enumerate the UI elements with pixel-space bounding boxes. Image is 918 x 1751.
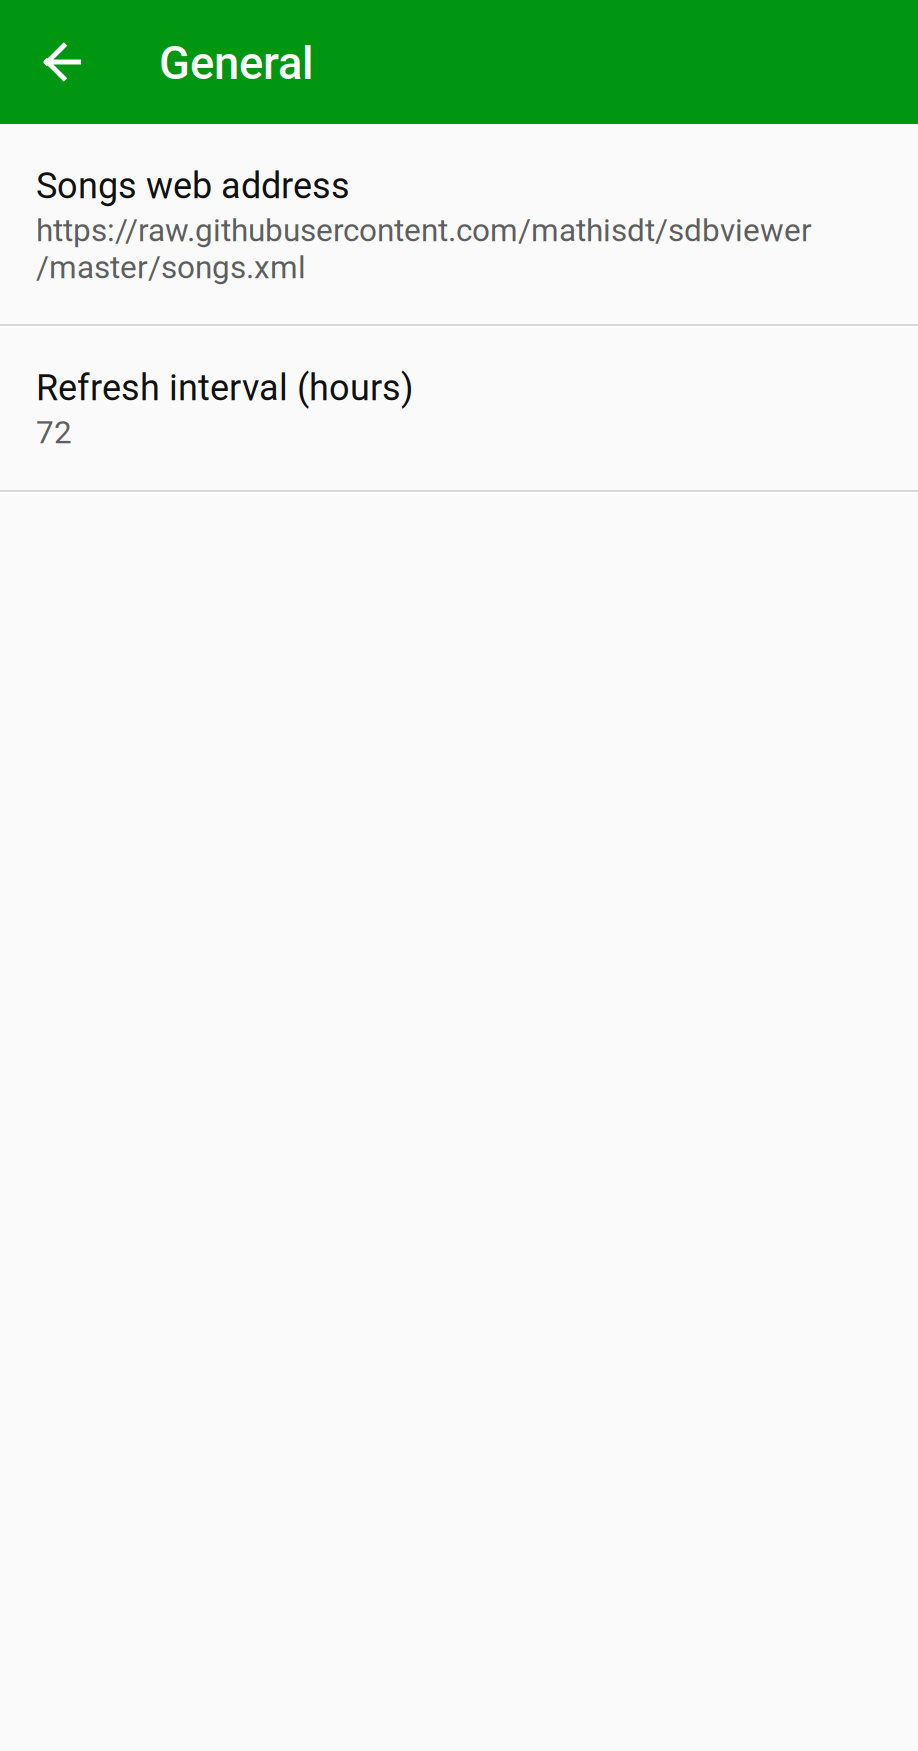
button[interactable]: Refresh interval (hours) [0, 328, 918, 490]
staticText: Refresh interval (hours) [36, 367, 414, 409]
staticText: General [159, 37, 314, 90]
staticText: https://raw.githubusercontent.com/mathis… [36, 212, 812, 249]
staticText: 72 [36, 414, 72, 451]
button[interactable]: Songs web address [0, 124, 918, 324]
staticText: Songs web address [36, 165, 350, 207]
staticText: /master/songs.xml [36, 249, 306, 286]
button[interactable]: Navigate up [0, 0, 125, 124]
